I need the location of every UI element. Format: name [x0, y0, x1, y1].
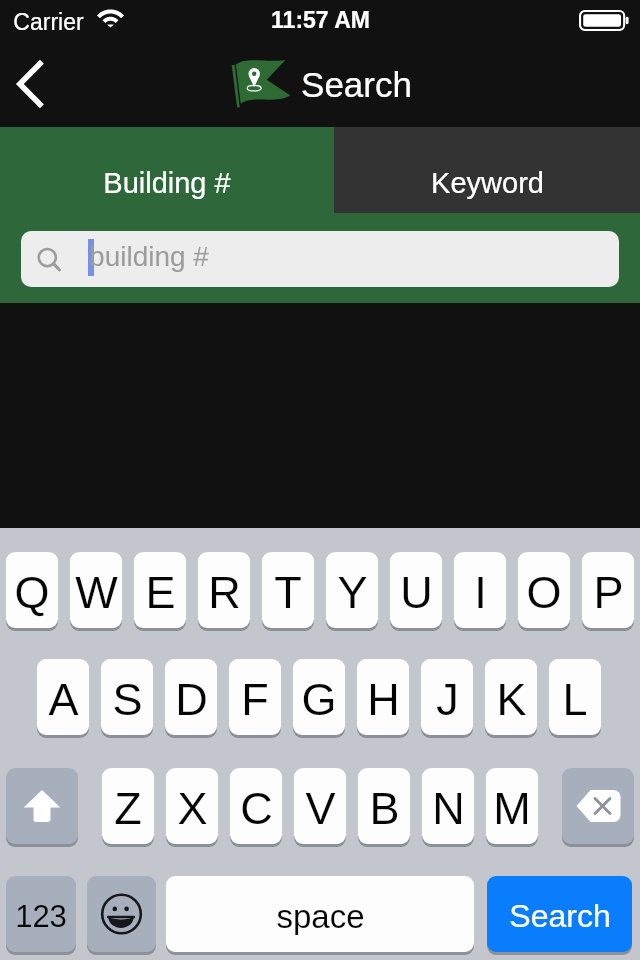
button[interactable]: A	[37, 659, 89, 735]
button[interactable]: S	[101, 659, 153, 735]
staticText: A	[48, 674, 79, 724]
staticText: Carrier	[13, 9, 84, 35]
button[interactable]: G	[293, 659, 345, 735]
button[interactable]: E	[134, 552, 186, 628]
button[interactable]: F	[229, 659, 281, 735]
button[interactable]: Z	[102, 768, 154, 844]
button[interactable]: K	[485, 659, 537, 735]
staticText: I	[474, 567, 487, 617]
staticText: space	[276, 898, 365, 935]
staticText: 123	[15, 899, 67, 934]
staticText: L	[562, 674, 588, 724]
button[interactable]: Back	[0, 40, 62, 127]
staticText: J	[436, 674, 459, 724]
staticText: O	[526, 567, 562, 617]
staticText: Z	[114, 783, 142, 833]
staticText: R	[208, 567, 241, 617]
button[interactable]: N	[422, 768, 474, 844]
staticText: D	[175, 674, 208, 724]
button[interactable]: Building #	[0, 127, 334, 213]
staticText: C	[240, 783, 273, 833]
button[interactable]: Y	[326, 552, 378, 628]
staticText: F	[241, 674, 269, 724]
staticText: G	[301, 674, 337, 724]
button[interactable]: B	[358, 768, 410, 844]
staticText: B	[369, 783, 400, 833]
button[interactable]: Backspace	[562, 768, 634, 844]
staticText: W	[75, 567, 118, 617]
staticText: Search	[301, 65, 412, 104]
staticText: 11:57 AM	[271, 7, 370, 33]
button[interactable]: W	[70, 552, 122, 628]
button[interactable]: Shift	[6, 768, 78, 844]
staticText: Search	[509, 898, 611, 934]
staticText: P	[593, 567, 624, 617]
button[interactable]: Keyword	[334, 127, 640, 213]
button[interactable]: J	[421, 659, 473, 735]
staticText: S	[112, 674, 143, 724]
staticText: K	[496, 674, 527, 724]
staticText: Q	[14, 567, 50, 617]
button[interactable]: Search	[487, 876, 632, 952]
button[interactable]: D	[165, 659, 217, 735]
button[interactable]: M	[486, 768, 538, 844]
staticText: U	[400, 567, 433, 617]
button[interactable]: O	[518, 552, 570, 628]
staticText: Building #	[103, 167, 231, 199]
staticText: T	[274, 567, 302, 617]
button[interactable]: Q	[6, 552, 58, 628]
button[interactable]: R	[198, 552, 250, 628]
staticText: X	[177, 783, 208, 833]
button[interactable]: X	[166, 768, 218, 844]
staticText: M	[493, 783, 531, 833]
button[interactable]: H	[357, 659, 409, 735]
staticText: Keyword	[431, 167, 544, 199]
button[interactable]: I	[454, 552, 506, 628]
button[interactable]: P	[582, 552, 634, 628]
button[interactable]: space	[166, 876, 474, 952]
staticText: H	[367, 674, 400, 724]
button[interactable]: C	[230, 768, 282, 844]
button[interactable]: V	[294, 768, 346, 844]
button[interactable]: T	[262, 552, 314, 628]
staticText: V	[305, 783, 336, 833]
staticText: Y	[337, 567, 368, 617]
button[interactable]: 123	[6, 876, 76, 952]
button[interactable]: L	[549, 659, 601, 735]
staticText: N	[432, 783, 465, 833]
button[interactable]: Emoji	[87, 876, 156, 952]
staticText: E	[145, 567, 176, 617]
button[interactable]: U	[390, 552, 442, 628]
staticText: building #	[89, 241, 209, 272]
button[interactable]: building #	[21, 231, 619, 287]
